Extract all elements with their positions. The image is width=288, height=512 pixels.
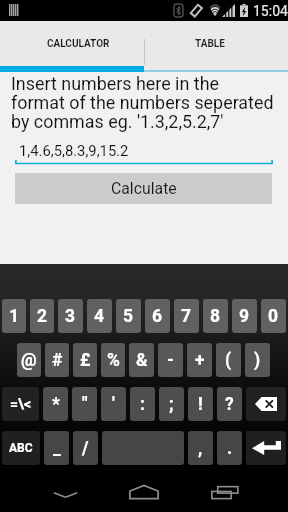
button[interactable]: Calculate	[15, 173, 272, 204]
button[interactable]: 6	[145, 299, 170, 333]
button[interactable]: £	[73, 343, 97, 377]
staticText: 2	[37, 306, 48, 327]
staticText: ?	[225, 394, 234, 415]
staticText: #	[52, 350, 63, 371]
button[interactable]: Hide keyboard	[33, 465, 97, 512]
staticText: "	[82, 394, 88, 415]
staticText: 6	[152, 306, 163, 327]
button[interactable]: *	[43, 387, 68, 421]
button[interactable]: Home	[112, 465, 176, 512]
button[interactable]: 7	[174, 299, 199, 333]
button[interactable]: .	[217, 431, 242, 465]
button[interactable]: 5	[116, 299, 141, 333]
button[interactable]: %	[101, 343, 125, 377]
staticText: _	[53, 438, 61, 459]
button[interactable]: !	[188, 387, 213, 421]
button[interactable]: 8	[203, 299, 228, 333]
staticText: @	[21, 350, 37, 371]
staticText: ABC	[9, 441, 33, 455]
staticText: =\<	[10, 396, 32, 412]
button[interactable]: ;	[159, 387, 184, 421]
staticText: -	[167, 350, 174, 371]
button[interactable]: :	[130, 387, 155, 421]
button[interactable]: +	[187, 343, 212, 377]
staticText: (	[225, 350, 232, 371]
button[interactable]: ,	[188, 431, 213, 465]
button[interactable]: ?	[217, 387, 242, 421]
staticText: )	[254, 350, 261, 371]
button[interactable]: ABC	[2, 431, 40, 465]
staticText: 9	[239, 306, 250, 327]
button[interactable]: 4	[87, 299, 112, 333]
staticText: 1	[9, 306, 20, 327]
staticText: Calculate	[111, 179, 177, 198]
button[interactable]: #	[45, 343, 69, 377]
staticText: :	[140, 394, 145, 415]
button[interactable]: 0	[261, 299, 286, 333]
staticText: CALCULATOR	[47, 38, 110, 50]
staticText: ,	[198, 438, 203, 459]
staticText: 4	[94, 306, 105, 327]
staticText: 1,4.6,5,8.3,9,15.2	[19, 142, 129, 159]
staticText: *	[52, 394, 60, 415]
button[interactable]: -	[158, 343, 183, 377]
button[interactable]: 2	[30, 299, 54, 333]
staticText: 3	[65, 306, 76, 327]
staticText: 7	[181, 306, 192, 327]
button[interactable]: /	[73, 431, 98, 465]
button[interactable]: Enter	[246, 431, 286, 465]
button[interactable]: _	[44, 431, 69, 465]
staticText: .	[227, 438, 233, 459]
staticText: 8	[210, 306, 221, 327]
staticText: £	[80, 350, 91, 371]
button[interactable]: CALCULATOR	[0, 21, 144, 72]
button[interactable]: Backspace	[246, 387, 286, 421]
staticText: /	[82, 438, 89, 459]
button[interactable]: 9	[232, 299, 257, 333]
button[interactable]: 3	[58, 299, 83, 333]
staticText: 0	[268, 306, 279, 327]
staticText: +	[195, 350, 205, 371]
button[interactable]: (	[216, 343, 241, 377]
staticText: ;	[169, 394, 174, 415]
button[interactable]: 1	[2, 299, 26, 333]
button[interactable]: @	[17, 343, 41, 377]
button[interactable]: "	[72, 387, 97, 421]
button[interactable]: '	[101, 387, 126, 421]
button[interactable]: TABLE	[144, 21, 288, 72]
staticText: Insert numbers here in the format of the…	[11, 75, 275, 132]
staticText: 5	[123, 306, 134, 327]
staticText: TABLE	[195, 38, 225, 50]
staticText: %	[107, 350, 120, 371]
button[interactable]: =\<	[2, 387, 39, 421]
staticText: !	[198, 394, 203, 415]
button[interactable]: Recent apps	[194, 465, 258, 512]
staticText: 15:04	[253, 3, 288, 19]
staticText: '	[112, 394, 115, 415]
staticText: &	[136, 350, 148, 371]
button[interactable]: &	[129, 343, 154, 377]
button[interactable]: )	[245, 343, 270, 377]
